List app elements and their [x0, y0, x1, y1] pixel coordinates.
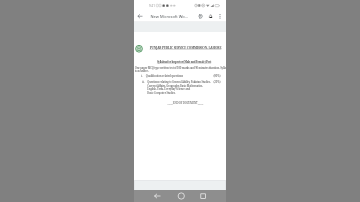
staticText: Qualification related questions	[146, 73, 214, 77]
button[interactable]: Home	[172, 190, 190, 202]
button[interactable]: Back	[148, 190, 166, 202]
staticText: (80%)	[213, 73, 220, 77]
button[interactable]: Navigate up	[134, 11, 146, 21]
button[interactable]: Recent apps	[194, 190, 212, 202]
staticText: (20%)	[213, 80, 220, 84]
staticText: PUNJAB PUBLIC SERVICE COMMISSION, LAHORE	[148, 46, 222, 50]
staticText: One paper MCQ type written test of 100 m…	[135, 65, 226, 72]
staticText: i.	[141, 73, 143, 77]
staticText: Questions relating to General Ability, P…	[147, 80, 214, 94]
staticText: New Microsoft Wo...	[150, 13, 195, 19]
staticText: 9:21	[149, 3, 155, 7]
staticText: _____END OF DOCUMENT_____	[144, 100, 226, 104]
button[interactable]: More options	[215, 11, 224, 21]
button[interactable]: Save to Drive	[205, 11, 215, 21]
staticText: ii.	[142, 80, 145, 84]
button[interactable]: Print	[195, 11, 205, 21]
staticText: Syllabus for Inspector (Male and Female)…	[143, 60, 225, 64]
